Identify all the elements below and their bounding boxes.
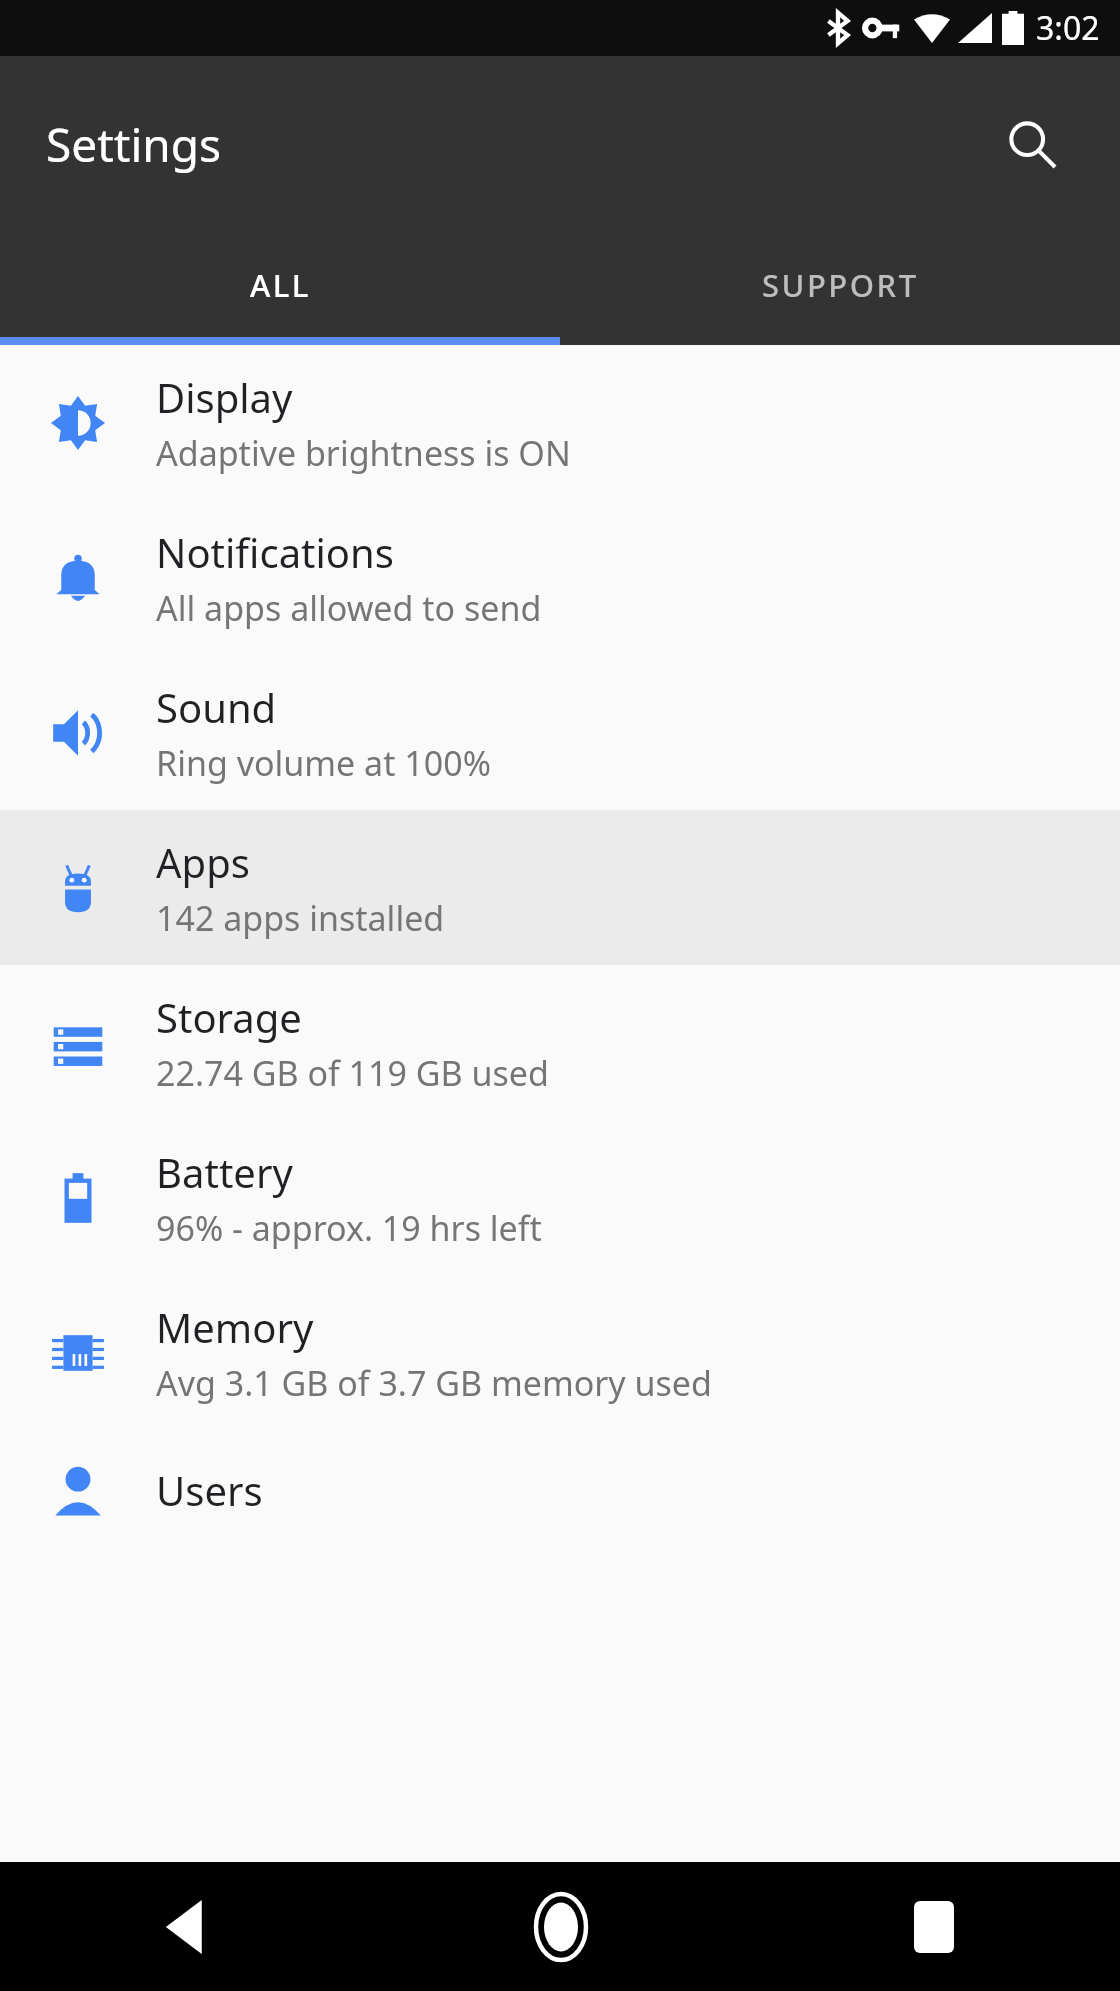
staticText: All apps allowed to send: [156, 585, 542, 631]
staticText: Storage: [156, 990, 302, 1044]
staticText: Users: [156, 1463, 263, 1517]
staticText: Settings: [46, 113, 222, 176]
staticText: ALL: [250, 264, 311, 306]
staticText: Memory: [156, 1300, 314, 1354]
button[interactable]: Back: [0, 1862, 374, 1991]
button[interactable]: Battery: [0, 1120, 1120, 1275]
staticText: 3:02: [1036, 6, 1100, 50]
button[interactable]: Recents: [747, 1862, 1120, 1991]
staticText: SUPPORT: [762, 264, 919, 306]
staticText: Battery: [156, 1145, 293, 1199]
staticText: Notifications: [156, 525, 394, 579]
button[interactable]: SUPPORT: [560, 232, 1120, 337]
staticText: Ring volume at 100%: [156, 740, 491, 786]
button[interactable]: Storage: [0, 965, 1120, 1120]
staticText: 142 apps installed: [156, 895, 445, 941]
staticText: 22.74 GB of 119 GB used: [156, 1050, 549, 1096]
button[interactable]: Users: [0, 1430, 1120, 1550]
staticText: Apps: [156, 835, 250, 889]
button[interactable]: Search: [982, 94, 1082, 194]
button[interactable]: Notifications: [0, 500, 1120, 655]
staticText: Avg 3.1 GB of 3.7 GB memory used: [156, 1360, 712, 1406]
staticText: 96% - approx. 19 hrs left: [156, 1205, 542, 1251]
button[interactable]: Display: [0, 345, 1120, 500]
button[interactable]: Home: [374, 1862, 747, 1991]
button[interactable]: Sound: [0, 655, 1120, 810]
staticText: Adaptive brightness is ON: [156, 430, 571, 476]
button[interactable]: Memory: [0, 1275, 1120, 1430]
staticText: Display: [156, 370, 293, 424]
button[interactable]: Apps: [0, 810, 1120, 965]
button[interactable]: ALL: [0, 232, 560, 337]
staticText: Sound: [156, 680, 277, 734]
